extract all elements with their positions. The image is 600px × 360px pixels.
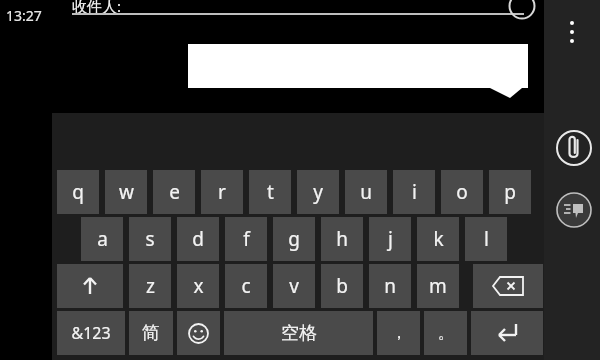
button[interactable]: q [57, 170, 99, 214]
staticText: p [504, 179, 516, 205]
staticText: l [484, 226, 489, 252]
staticText: i [412, 179, 417, 205]
button[interactable]: 收件人: [72, 0, 522, 22]
button[interactable]: z [129, 264, 171, 308]
button[interactable]: More options [544, 14, 600, 50]
button[interactable]: ， [377, 311, 420, 355]
staticText: 。 [438, 323, 454, 343]
staticText: 空格 [281, 322, 317, 345]
staticText: h [336, 226, 348, 252]
staticText: x [193, 273, 204, 299]
button[interactable]: Send message [556, 192, 592, 228]
staticText: u [360, 179, 372, 205]
button[interactable]: s [129, 217, 171, 261]
staticText: s [145, 226, 155, 252]
button[interactable]: v [273, 264, 315, 308]
button[interactable]: Attach [556, 130, 592, 166]
button[interactable]: p [489, 170, 531, 214]
button[interactable]: w [105, 170, 147, 214]
button[interactable]: j [369, 217, 411, 261]
staticText: a [97, 226, 108, 252]
button[interactable]: l [465, 217, 507, 261]
staticText: 收件人: [72, 0, 122, 16]
button[interactable]: b [321, 264, 363, 308]
button[interactable]: o [441, 170, 483, 214]
staticText: 13:27 [6, 6, 42, 25]
button[interactable]: k [417, 217, 459, 261]
button[interactable]: n [369, 264, 411, 308]
button[interactable]: 简 [129, 311, 173, 355]
button[interactable] [177, 311, 220, 355]
staticText: v [289, 273, 299, 299]
button[interactable]: c [225, 264, 267, 308]
button[interactable]: &123 [57, 311, 125, 355]
button[interactable]: h [321, 217, 363, 261]
button[interactable]: t [249, 170, 291, 214]
staticText: d [192, 226, 204, 252]
staticText: e [169, 179, 180, 205]
button[interactable] [57, 264, 123, 308]
staticText: y [313, 179, 323, 205]
staticText: k [433, 226, 444, 252]
button[interactable]: 。 [424, 311, 467, 355]
button[interactable]: Add recipient [508, 0, 536, 20]
button[interactable]: m [417, 264, 459, 308]
staticText: o [456, 179, 468, 205]
staticText: c [241, 273, 251, 299]
staticText: j [388, 226, 393, 252]
button[interactable]: x [177, 264, 219, 308]
button[interactable]: 空格 [224, 311, 373, 355]
button[interactable]: d [177, 217, 219, 261]
button[interactable]: f [225, 217, 267, 261]
staticText: w [119, 179, 134, 205]
button[interactable]: y [297, 170, 339, 214]
button[interactable]: i [393, 170, 435, 214]
button[interactable] [188, 44, 528, 98]
button[interactable]: r [201, 170, 243, 214]
staticText: r [218, 179, 226, 205]
button[interactable]: u [345, 170, 387, 214]
staticText: f [243, 226, 250, 252]
button[interactable] [471, 311, 543, 355]
button[interactable] [473, 264, 543, 308]
staticText: &123 [71, 322, 111, 344]
staticText: n [384, 273, 396, 299]
staticText: ， [391, 323, 407, 343]
staticText: t [267, 179, 274, 205]
staticText: 简 [142, 322, 160, 345]
staticText: b [336, 273, 348, 299]
button[interactable]: e [153, 170, 195, 214]
staticText: q [72, 179, 84, 205]
button[interactable]: g [273, 217, 315, 261]
button[interactable]: a [81, 217, 123, 261]
staticText: m [429, 273, 447, 299]
staticText: g [288, 226, 300, 252]
staticText: z [146, 273, 155, 299]
